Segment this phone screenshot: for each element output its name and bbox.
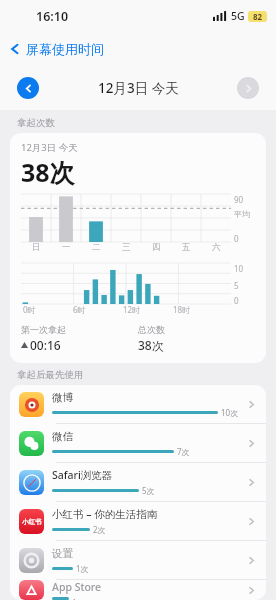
staticText: 12月3日 今天	[21, 141, 78, 154]
staticText: 90	[234, 194, 244, 205]
staticText: 5次	[142, 485, 155, 496]
staticText: 12月3日 今天	[98, 79, 179, 97]
button[interactable]: 屏幕使用时间	[0, 32, 276, 66]
staticText: 设置	[52, 547, 73, 560]
staticText: 0	[234, 233, 239, 244]
staticText: 38次	[138, 337, 164, 353]
button[interactable]: 设置	[10, 541, 266, 579]
staticText: 12时	[123, 304, 141, 315]
staticText: 10次	[221, 407, 239, 418]
staticText: 拿起后最先使用	[17, 369, 84, 381]
staticText: 屏幕使用时间	[26, 41, 104, 57]
staticText: 平均	[234, 209, 250, 219]
staticText: 微信	[52, 430, 73, 443]
staticText: 五	[182, 242, 191, 253]
staticText: 5	[234, 280, 239, 291]
staticText: 四	[152, 242, 161, 253]
staticText: 0	[234, 295, 239, 306]
staticText: 00:16	[30, 337, 61, 353]
staticText: 小红书 – 你的生活指南	[52, 507, 158, 521]
staticText: 二	[92, 242, 101, 253]
staticText: App Store	[52, 580, 102, 594]
button[interactable]: Next day	[237, 77, 259, 99]
staticText: 38次	[21, 155, 75, 189]
button[interactable]: 微博	[10, 385, 266, 423]
staticText: 18时	[173, 304, 191, 315]
button[interactable]: 小红书	[10, 502, 266, 540]
staticText: 0时	[23, 304, 36, 315]
staticText: 16:10	[36, 8, 69, 25]
staticText: 1次	[76, 563, 89, 574]
staticText: 总次数	[138, 324, 165, 335]
button[interactable]: Safari浏览器	[10, 463, 266, 501]
staticText: 三	[122, 242, 131, 253]
staticText: 7次	[177, 446, 190, 457]
button[interactable]: 微信	[10, 424, 266, 462]
staticText: 2次	[93, 524, 106, 535]
staticText: 5G	[231, 9, 245, 23]
staticText: 日	[32, 242, 41, 253]
button[interactable]: Previous day	[17, 77, 39, 99]
staticText: 6时	[73, 304, 86, 315]
button[interactable]: App Store	[10, 580, 266, 600]
staticText: 微博	[52, 391, 73, 404]
staticText: 82	[253, 11, 263, 22]
staticText: 六	[212, 242, 221, 253]
staticText: 1次	[72, 597, 85, 600]
staticText: 一	[62, 242, 71, 253]
staticText: 第一次拿起	[21, 324, 66, 335]
staticText: 10	[234, 263, 244, 274]
staticText: 拿起次数	[17, 117, 55, 129]
staticText: Safari浏览器	[52, 468, 113, 482]
staticText: 小红书	[22, 518, 42, 526]
